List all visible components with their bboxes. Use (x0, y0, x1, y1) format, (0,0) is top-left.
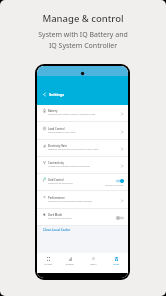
button[interactable]: Clear Local Cache (43, 227, 71, 231)
staticText: Settings (49, 92, 65, 97)
staticText: SYSTEM (44, 263, 53, 266)
staticText: Configure your performance display setti… (48, 200, 92, 203)
button[interactable]: Back (42, 89, 65, 99)
other: Grid Control (116, 179, 124, 183)
other: Performance (120, 199, 124, 203)
button[interactable]: ENERGY (59, 257, 82, 266)
staticText: Performance (48, 196, 65, 200)
staticText: Change your gateway internet connectivit… (48, 165, 91, 168)
staticText: System with IQ Battery and IQ System Con… (38, 30, 128, 50)
staticText: Electricity Rate (48, 144, 67, 148)
other: Connectivity (120, 164, 124, 168)
button[interactable]: Performance (37, 192, 128, 209)
button[interactable]: Electricity Rate (37, 140, 128, 157)
staticText: Load Control (48, 127, 65, 131)
button[interactable]: Battery (37, 105, 128, 122)
staticText: System is On Grid (105, 184, 124, 187)
other: Back (42, 92, 47, 97)
button[interactable]: ARRAY (82, 257, 105, 266)
staticText: Battery (48, 109, 58, 113)
staticText: MORE (113, 263, 120, 266)
staticText: Grid Control (48, 178, 64, 182)
staticText: Dark Mode (48, 213, 63, 217)
button[interactable]: MORE (105, 257, 128, 266)
staticText: View/Edit the electricity rate structure… (48, 148, 99, 151)
staticText: Manage & control (42, 12, 124, 25)
other: Load Control (120, 130, 124, 134)
staticText: Dark mode is turned off (48, 217, 72, 220)
staticText: Clear Local Cache (43, 227, 71, 231)
button[interactable]: Grid Control (37, 174, 128, 191)
other: Dark Mode (116, 216, 124, 220)
button[interactable]: Dark Mode (37, 209, 128, 226)
staticText: ENERGY (66, 263, 75, 266)
button[interactable]: Connectivity (37, 157, 128, 174)
other: Electricity Rate (120, 147, 124, 151)
staticText: Optimize your battery based on usage and… (48, 113, 96, 116)
button[interactable]: Load Control (37, 123, 128, 140)
staticText: Connectivity (48, 161, 64, 165)
staticText: ARRAY (90, 263, 97, 266)
staticText: Control power to your loads (48, 131, 76, 134)
staticText: Options to be on/off grid (48, 182, 73, 185)
other: Battery (120, 112, 124, 116)
button[interactable]: SYSTEM (37, 257, 59, 266)
